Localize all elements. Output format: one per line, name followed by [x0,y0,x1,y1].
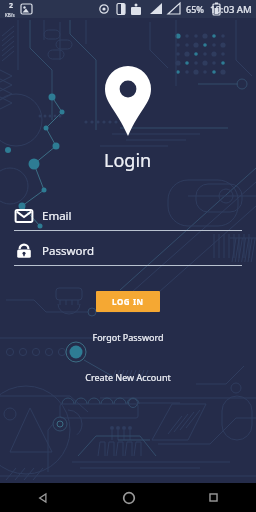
staticText: KB/s [5,12,15,18]
button[interactable]: Home [86,483,171,512]
button[interactable]: Recent apps [171,483,256,512]
staticText: 65% [186,3,204,15]
staticText: LOG IN [112,296,144,307]
staticText: 2 [9,1,14,11]
button[interactable]: Password [14,240,242,262]
staticText: Email [42,208,72,224]
button[interactable]: LOG IN [96,291,160,312]
button[interactable]: Forgot Password [84,328,172,346]
staticText: Create New Account [85,371,171,383]
button[interactable]: Back [0,483,86,512]
button[interactable]: Create New Account [77,368,179,386]
staticText: Password [42,243,95,259]
staticText: Login [104,148,152,173]
button[interactable]: Email [14,205,242,227]
staticText: Forgot Password [92,331,164,343]
staticText: 10:03 AM [210,3,252,16]
